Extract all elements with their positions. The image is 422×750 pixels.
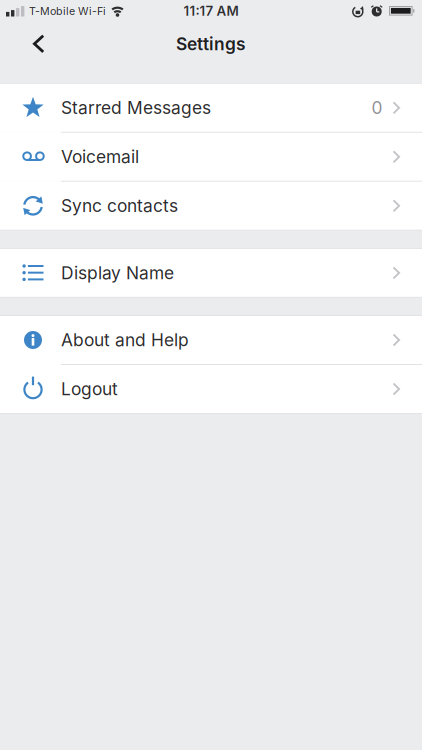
staticText: Settings	[176, 34, 246, 54]
button[interactable]: Sync contacts	[0, 182, 422, 230]
button[interactable]: Display Name	[0, 249, 422, 297]
staticText: About and Help	[61, 330, 189, 350]
button[interactable]	[0, 30, 45, 57]
button[interactable]: Logout	[0, 365, 422, 413]
staticText: Voicemail	[61, 147, 139, 167]
staticText: Starred Messages	[61, 98, 211, 118]
button[interactable]: Starred Messages	[0, 84, 422, 132]
staticText: T-Mobile Wi-Fi	[29, 5, 106, 17]
staticText: Display Name	[61, 263, 174, 283]
button[interactable]: Voicemail	[0, 133, 422, 181]
staticText: 11:17 AM	[183, 3, 238, 19]
staticText: 0	[371, 98, 382, 118]
staticText: Sync contacts	[61, 196, 178, 216]
staticText: Logout	[61, 379, 118, 399]
button[interactable]: About and Help	[0, 316, 422, 364]
